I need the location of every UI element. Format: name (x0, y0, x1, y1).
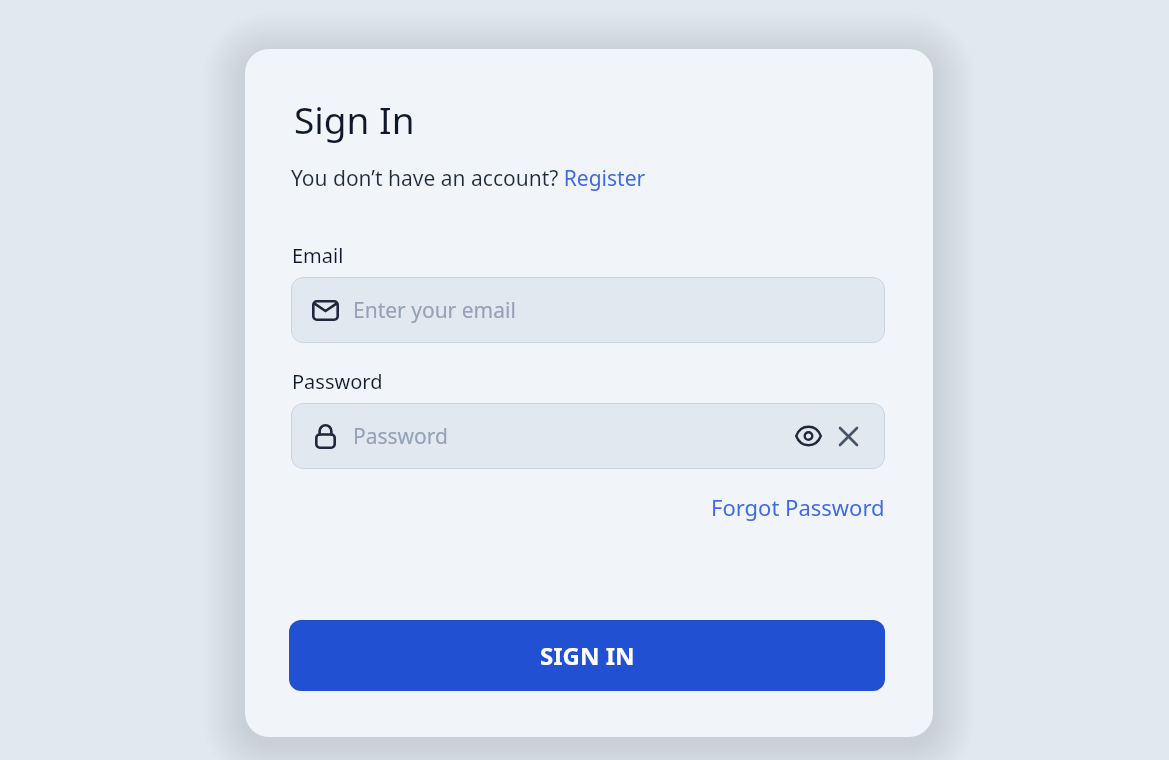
button[interactable]: Forgot Password (711, 492, 885, 522)
button[interactable]: Enter your email (291, 277, 885, 343)
button[interactable]: You don’t have an account? Register (291, 164, 646, 193)
button[interactable] (833, 421, 863, 451)
staticText: Sign In (294, 94, 415, 144)
staticText: Password (292, 368, 383, 395)
staticText: Enter your email (353, 296, 516, 325)
staticText: Email (292, 242, 344, 269)
staticText: Forgot Password (711, 492, 885, 522)
staticText: Password (353, 422, 448, 451)
button[interactable]: SIGN IN (289, 620, 885, 691)
staticText: SIGN IN (540, 639, 635, 672)
button[interactable] (791, 419, 825, 453)
button[interactable]: Password (291, 403, 885, 469)
